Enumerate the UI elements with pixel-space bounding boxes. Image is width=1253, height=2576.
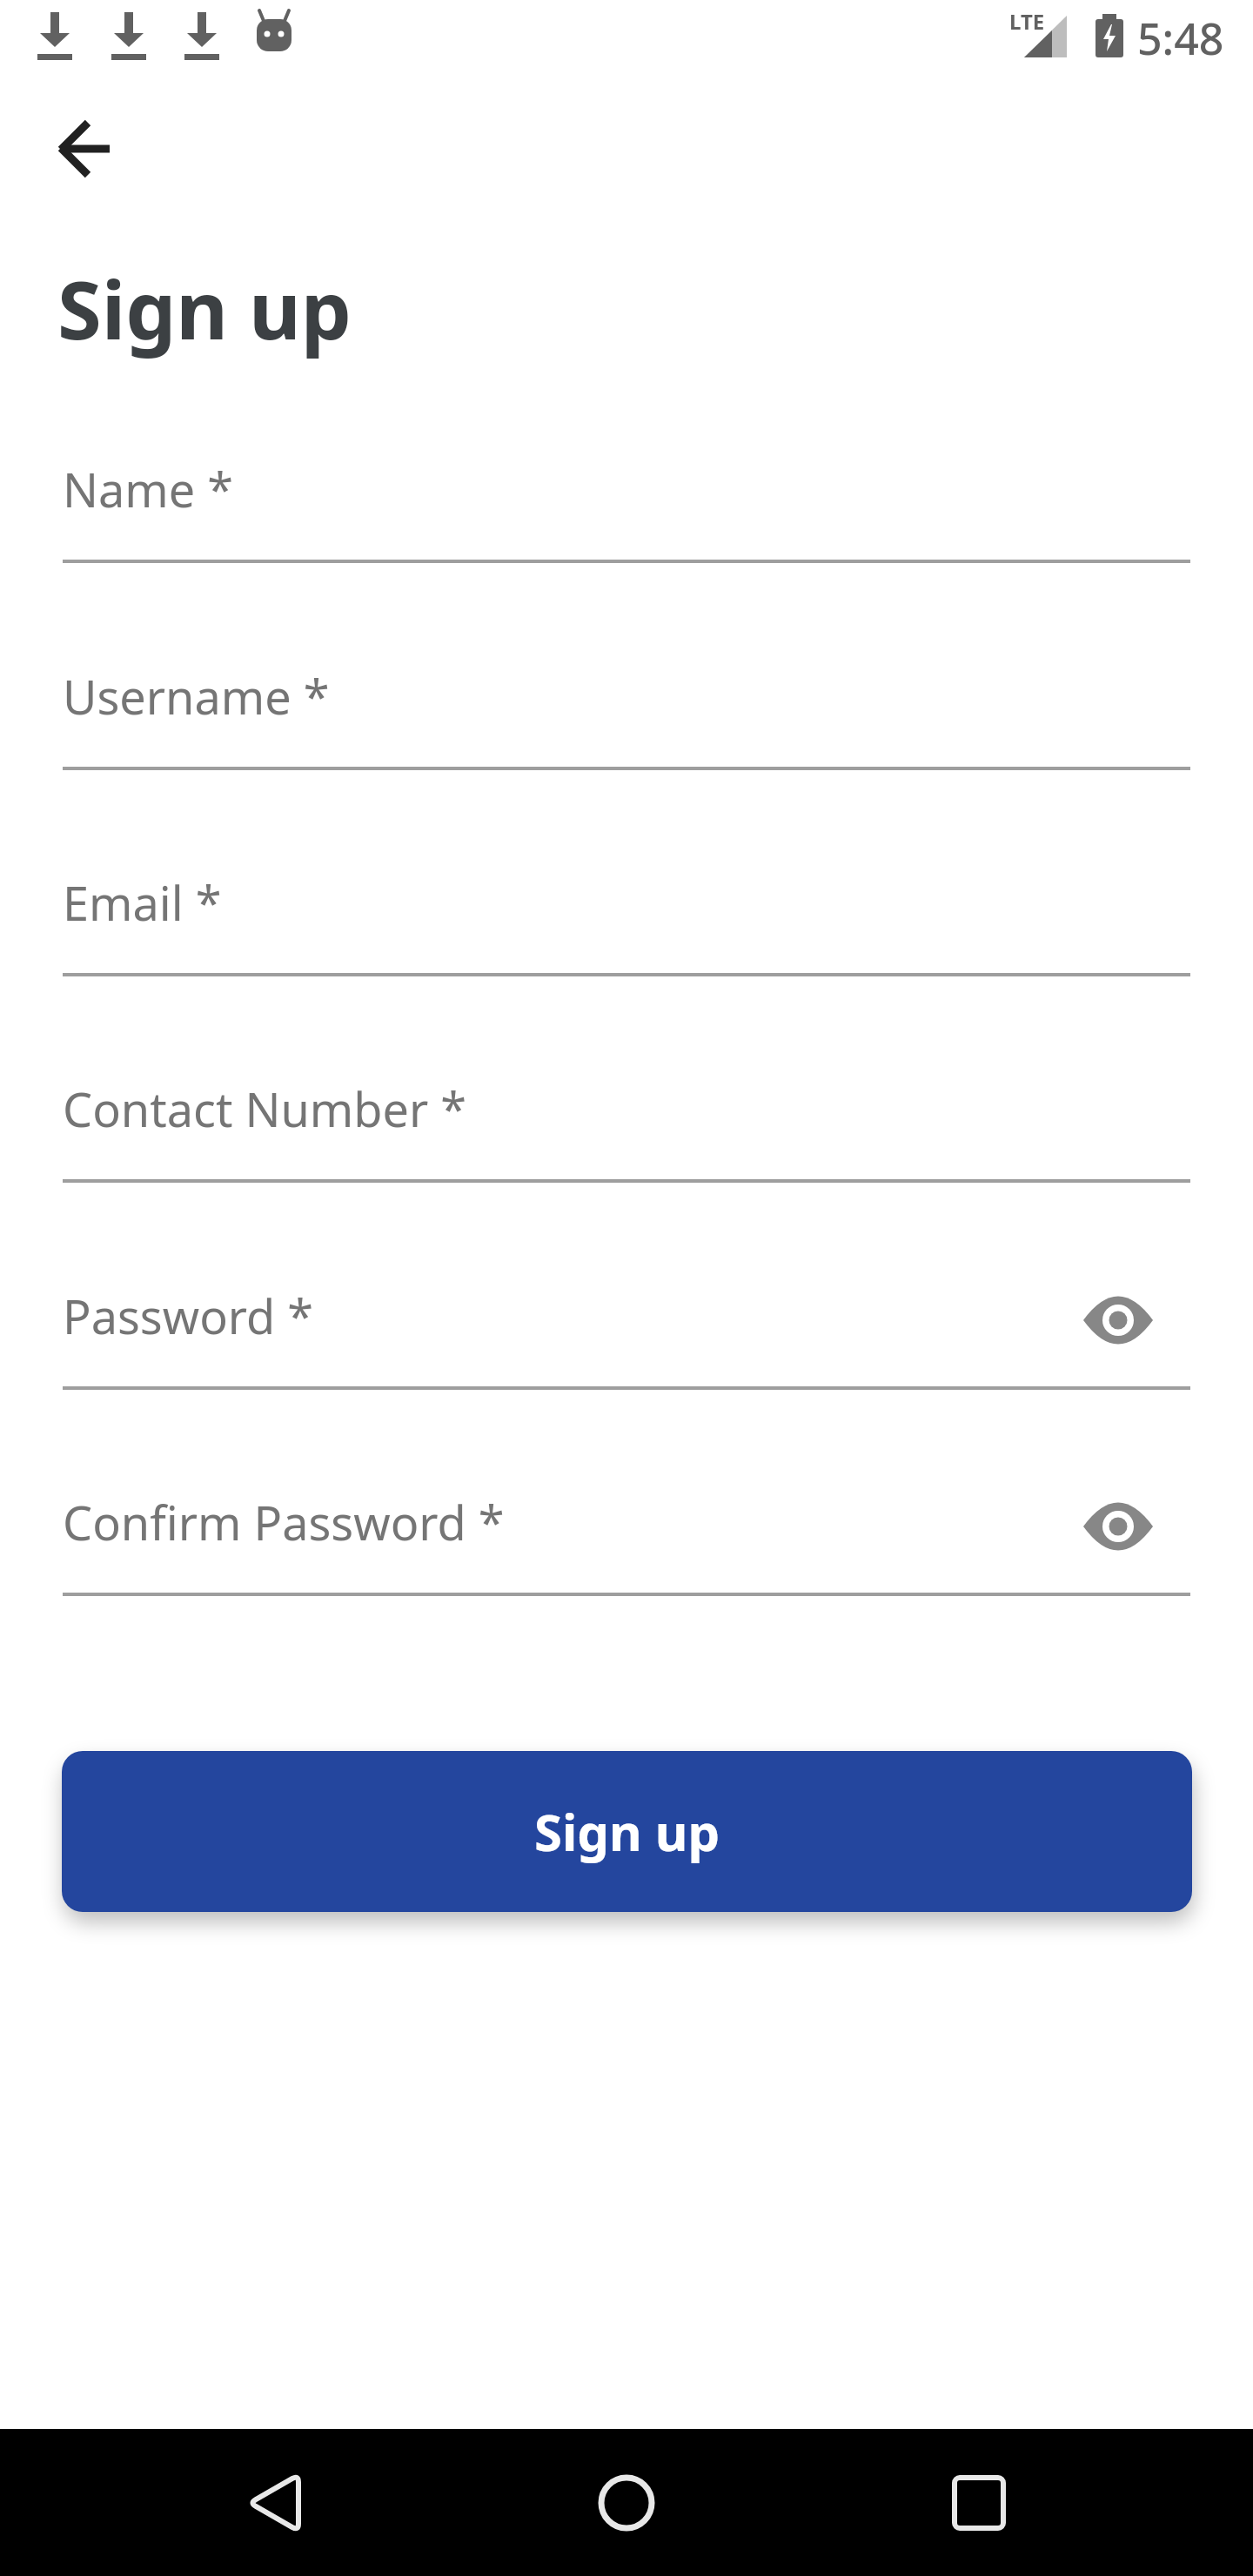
staticText: Sign up [57, 254, 352, 363]
staticText: Username * [63, 664, 330, 728]
button[interactable] [222, 2451, 326, 2555]
staticText: Contact Number * [63, 1077, 467, 1141]
button[interactable] [574, 2451, 679, 2555]
button[interactable]: Username * [63, 647, 1190, 770]
button[interactable] [45, 108, 127, 190]
button[interactable] [1083, 1296, 1153, 1345]
button[interactable]: Password * [63, 1266, 1190, 1390]
button[interactable] [1083, 1502, 1153, 1551]
button[interactable]: Name * [63, 439, 1190, 563]
staticText: Confirm Password * [63, 1490, 505, 1554]
staticText: LTE [1009, 7, 1045, 36]
staticText: Password * [63, 1284, 314, 1348]
button[interactable]: Email * [63, 853, 1190, 976]
staticText: Name * [63, 457, 234, 521]
button[interactable] [927, 2451, 1031, 2555]
button[interactable]: Contact Number * [63, 1059, 1190, 1183]
staticText: 5:48 [1137, 9, 1224, 68]
staticText: Email * [63, 870, 222, 935]
staticText: Sign up [534, 1797, 720, 1866]
button[interactable]: Confirm Password * [63, 1472, 1190, 1596]
button[interactable]: Sign up [62, 1751, 1192, 1912]
